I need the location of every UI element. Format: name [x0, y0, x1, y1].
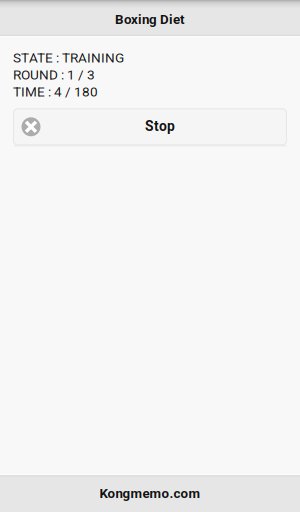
staticText: Kongmemo.com	[99, 486, 200, 501]
staticText: Boxing Diet	[115, 12, 185, 27]
button[interactable]: Kongmemo.com	[0, 474, 300, 512]
button[interactable]: Stop	[13, 109, 286, 145]
staticText: ROUND : 1 / 3	[13, 67, 95, 83]
staticText: Stop	[145, 118, 175, 134]
staticText: STATE : TRAINING	[13, 50, 124, 66]
staticText: TIME : 4 / 180	[13, 84, 98, 100]
